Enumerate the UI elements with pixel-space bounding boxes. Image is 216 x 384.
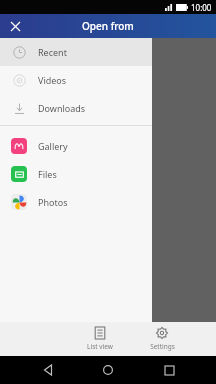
button[interactable]: Recents [156,357,182,383]
button[interactable]: Home [95,357,121,383]
staticText: Open from [82,19,134,33]
staticText: 10:00 [191,2,212,13]
staticText: Gallery [38,140,68,152]
button[interactable]: Gallery [0,132,152,160]
staticText: List view [87,342,113,351]
staticText: Photos [38,196,68,208]
button[interactable]: Files [0,160,152,188]
button[interactable]: Photos [0,188,152,216]
button[interactable]: Settings [131,322,193,356]
button[interactable]: Recent [0,38,152,66]
button[interactable]: Close [6,17,24,35]
button[interactable]: List view [69,322,131,356]
button[interactable]: Back [35,357,61,383]
staticText: Settings [150,342,175,351]
button[interactable]: Downloads [0,94,152,122]
button[interactable]: Videos [0,66,152,94]
staticText: Files [38,168,57,180]
staticText: Videos [38,74,67,86]
staticText: Downloads [38,102,86,114]
staticText: Recent [38,46,67,58]
